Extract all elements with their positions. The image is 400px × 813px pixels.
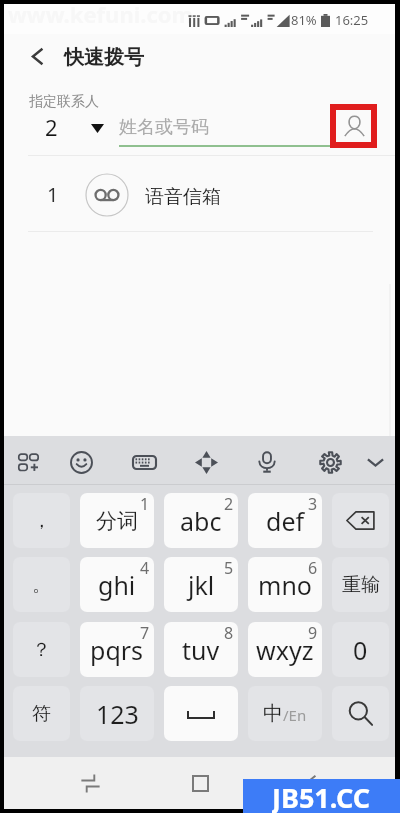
button[interactable]: Backspace: [332, 493, 389, 548]
button[interactable]: Space: [164, 686, 238, 741]
staticText: 9: [308, 622, 318, 644]
staticText: JB51.CC: [272, 779, 371, 813]
staticText: 5: [224, 557, 234, 579]
staticText: ？: [32, 638, 51, 662]
button[interactable]: Back: [288, 761, 332, 805]
staticText: 3: [308, 493, 318, 515]
button[interactable]: ghi: [80, 557, 154, 612]
staticText: abc: [180, 504, 222, 538]
button[interactable]: [4, 157, 395, 232]
staticText: tuv: [182, 633, 220, 667]
button[interactable]: 2: [28, 111, 110, 145]
button[interactable]: Back: [15, 34, 59, 78]
staticText: ，: [32, 509, 51, 533]
staticText: 4: [140, 557, 150, 579]
staticText: 2: [45, 112, 58, 142]
button[interactable]: Voice input: [245, 440, 289, 484]
button[interactable]: mno: [248, 557, 322, 612]
button[interactable]: jkl: [164, 557, 238, 612]
staticText: www.kefuni.com: [8, 0, 193, 29]
button[interactable]: abc: [164, 493, 238, 548]
staticText: pqrs: [90, 633, 144, 667]
staticText: def: [266, 504, 305, 538]
staticText: 姓名或号码: [119, 116, 209, 139]
staticText: 1: [140, 493, 150, 515]
staticText: 快速拨号: [64, 45, 144, 70]
staticText: wxyz: [256, 633, 314, 667]
staticText: 中: [263, 701, 283, 726]
staticText: 8: [224, 622, 234, 644]
staticText: 指定联系人: [29, 93, 99, 111]
staticText: mno: [258, 568, 312, 602]
button[interactable]: 符: [13, 686, 70, 741]
staticText: 2: [224, 493, 234, 515]
staticText: 重输: [342, 573, 380, 597]
button[interactable]: tuv: [164, 622, 238, 677]
button[interactable]: def: [248, 493, 322, 548]
button[interactable]: 中: [248, 686, 322, 741]
button[interactable]: Emoji: [59, 440, 103, 484]
button[interactable]: Choose contact: [325, 100, 383, 150]
button[interactable]: ？: [13, 622, 70, 677]
button[interactable]: 123: [80, 686, 154, 741]
staticText: 123: [96, 697, 139, 731]
staticText: 语音信箱: [145, 185, 221, 209]
button[interactable]: Hide keyboard: [353, 440, 397, 484]
staticText: 0: [353, 633, 368, 667]
staticText: jkl: [188, 568, 215, 602]
button[interactable]: Search: [332, 686, 389, 741]
staticText: 。: [32, 573, 51, 597]
staticText: 分词: [96, 508, 138, 534]
staticText: 16:25: [335, 11, 369, 29]
staticText: 1: [47, 181, 59, 208]
staticText: /En: [283, 705, 307, 725]
button[interactable]: Settings: [308, 440, 352, 484]
button[interactable]: 分词: [80, 493, 154, 548]
button[interactable]: 重输: [332, 557, 389, 612]
button[interactable]: pqrs: [80, 622, 154, 677]
staticText: 81%: [291, 11, 317, 29]
button[interactable]: 。: [13, 557, 70, 612]
button[interactable]: Keyboard: [122, 440, 166, 484]
staticText: ghi: [98, 568, 136, 602]
staticText: 7: [140, 622, 150, 644]
button[interactable]: 0: [332, 622, 389, 677]
button[interactable]: ，: [13, 493, 70, 548]
button[interactable]: Home: [178, 761, 222, 805]
button[interactable]: wxyz: [248, 622, 322, 677]
button[interactable]: Recents: [68, 761, 112, 805]
staticText: 6: [308, 557, 318, 579]
button[interactable]: Move cursor: [184, 440, 228, 484]
staticText: 符: [32, 702, 51, 726]
button[interactable]: Apps: [6, 440, 50, 484]
